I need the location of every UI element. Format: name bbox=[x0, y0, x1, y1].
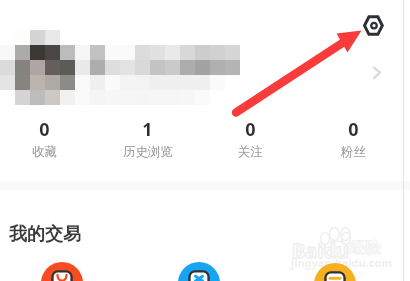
staticText: 我的交易 bbox=[9, 223, 81, 246]
button[interactable]: 0 bbox=[0, 117, 96, 165]
button[interactable]: Refunds bbox=[314, 263, 356, 281]
staticText: 0 bbox=[39, 117, 50, 142]
button[interactable]: Orders bbox=[41, 262, 83, 281]
staticText: 0 bbox=[348, 117, 359, 142]
staticText: 0 bbox=[245, 117, 256, 142]
staticText: 1 bbox=[142, 117, 153, 142]
button[interactable]: 0 bbox=[199, 117, 302, 165]
button[interactable]: Cancelled bbox=[178, 262, 220, 281]
staticText: 历史浏览 bbox=[123, 144, 173, 160]
staticText: jingyan.baidu.com bbox=[291, 255, 393, 270]
button[interactable]: Open profile bbox=[367, 60, 389, 82]
staticText: 粉丝 bbox=[341, 144, 366, 160]
staticText: 经验 bbox=[350, 238, 381, 258]
staticText: Baidu bbox=[292, 237, 349, 264]
staticText: 关注 bbox=[238, 144, 263, 160]
button[interactable]: Settings bbox=[360, 12, 388, 40]
button[interactable]: 0 bbox=[302, 117, 405, 165]
button[interactable]: 1 bbox=[96, 117, 199, 165]
staticText: 收藏 bbox=[32, 144, 57, 160]
button[interactable]: 我的交易 bbox=[9, 223, 81, 246]
